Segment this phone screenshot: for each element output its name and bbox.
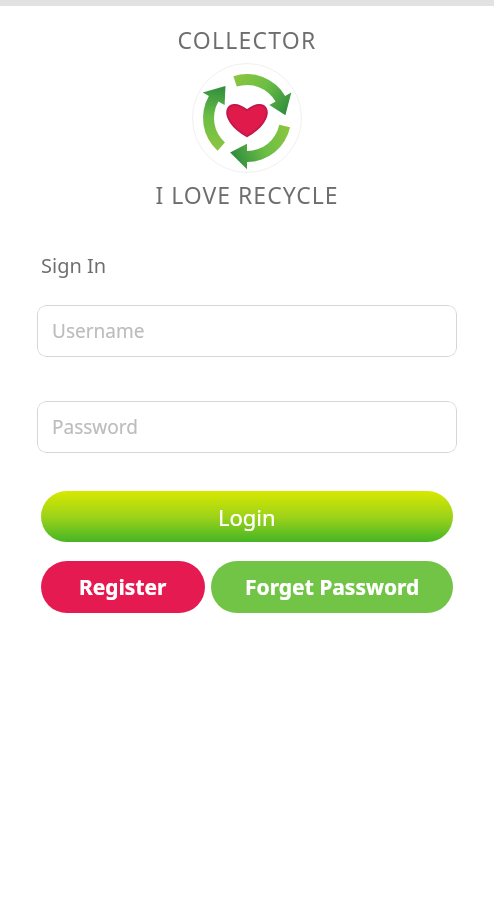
staticText: Username <box>52 318 145 344</box>
staticText: Register <box>79 573 167 602</box>
staticText: I LOVE RECYCLE <box>0 179 494 210</box>
staticText: Login <box>218 502 276 532</box>
staticText: Password <box>52 414 138 440</box>
button[interactable]: Forget Password <box>211 561 453 613</box>
staticText: Sign In <box>41 252 107 279</box>
button[interactable]: Register <box>41 561 205 613</box>
button[interactable]: Username <box>37 305 457 357</box>
staticText: Forget Password <box>245 573 420 602</box>
staticText: COLLECTOR <box>0 24 494 55</box>
button[interactable]: Login <box>41 491 453 542</box>
button[interactable]: Password <box>37 401 457 453</box>
